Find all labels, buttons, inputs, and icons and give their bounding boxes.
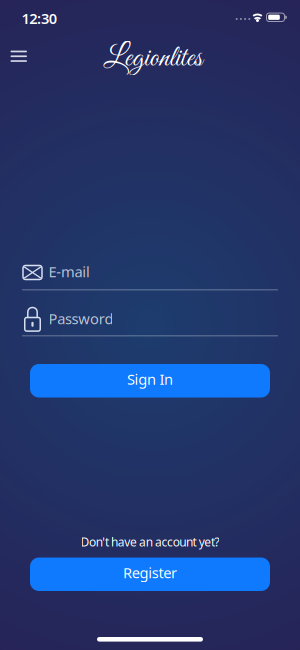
button[interactable]: Sign In bbox=[30, 364, 270, 397]
button[interactable]: Password bbox=[22, 304, 278, 336]
staticText: Password bbox=[48, 309, 113, 328]
button[interactable]: E-mail bbox=[22, 264, 278, 290]
staticText: 12:30 bbox=[21, 8, 57, 28]
staticText: Legionlites bbox=[103, 40, 202, 77]
button[interactable]: Register bbox=[30, 557, 270, 591]
button[interactable]: Menu bbox=[6, 47, 31, 66]
staticText: Sign In bbox=[127, 369, 173, 389]
staticText: Register bbox=[123, 563, 177, 582]
staticText: E-mail bbox=[48, 262, 90, 281]
staticText: Don't have an account yet? bbox=[80, 534, 219, 550]
